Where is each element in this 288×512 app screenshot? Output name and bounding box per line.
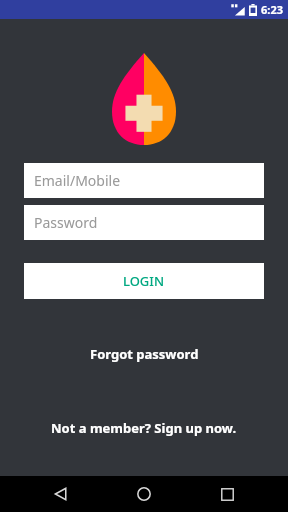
staticText: Password — [34, 213, 98, 232]
button[interactable]: Email/Mobile — [24, 163, 264, 198]
button[interactable]: Recent apps — [205, 476, 249, 512]
button[interactable]: LOGIN — [24, 263, 264, 299]
button[interactable]: Back — [39, 476, 83, 512]
staticText: Forgot password — [90, 345, 199, 363]
button[interactable]: Password — [24, 205, 264, 240]
button[interactable]: Not a member? Sign up now. — [39, 415, 249, 441]
staticText: LOGIN — [123, 272, 165, 290]
button[interactable]: Home — [122, 476, 166, 512]
staticText: 6:23 — [261, 2, 283, 17]
staticText: Email/Mobile — [34, 171, 121, 190]
button[interactable]: Forgot password — [78, 341, 211, 367]
staticText: Not a member? Sign up now. — [51, 419, 237, 437]
